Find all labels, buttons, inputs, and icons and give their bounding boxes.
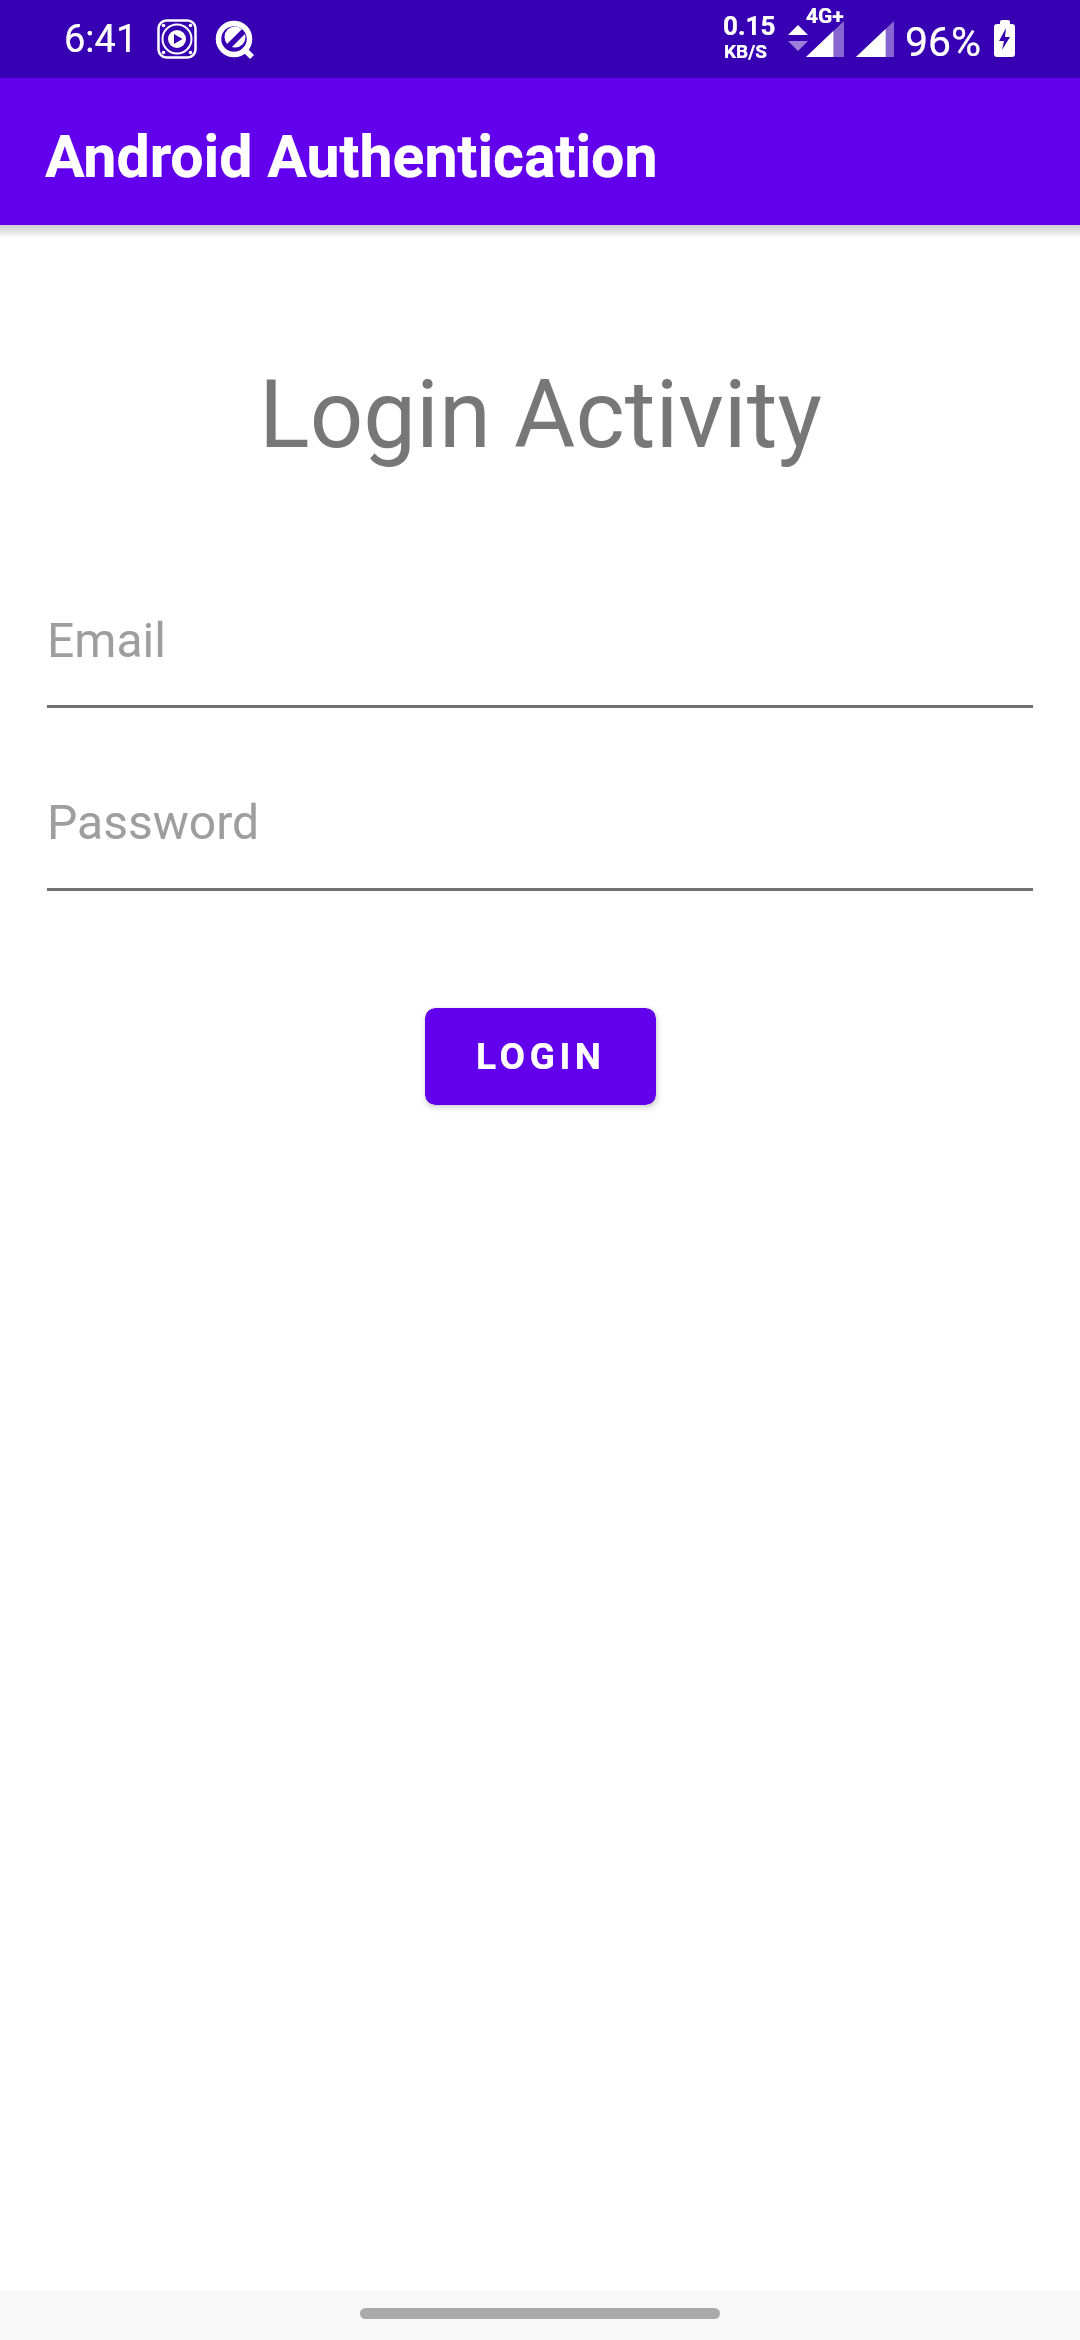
- staticText: Password: [47, 794, 260, 850]
- staticText: 96%: [905, 18, 982, 66]
- staticText: 0.15: [723, 11, 776, 41]
- button[interactable]: Password: [47, 782, 1033, 891]
- button[interactable]: [360, 2308, 720, 2319]
- staticText: KB/S: [724, 40, 767, 62]
- button[interactable]: LOGIN: [425, 1008, 656, 1105]
- staticText: 4G+: [806, 4, 844, 29]
- staticText: Email: [47, 612, 166, 668]
- staticText: Android Authentication: [45, 122, 658, 191]
- staticText: 6:41: [64, 17, 138, 62]
- staticText: LOGIN: [476, 1035, 606, 1078]
- button[interactable]: Email: [47, 600, 1033, 708]
- staticText: Login Activity: [259, 360, 822, 470]
